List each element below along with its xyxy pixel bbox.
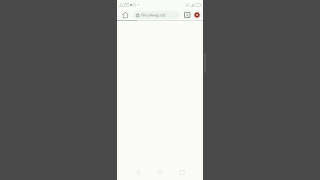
button[interactable]: filmy4wap.site (133, 11, 179, 19)
staticText: 4G (185, 2, 190, 8)
button[interactable]: Back (133, 165, 143, 180)
staticText: filmy4wap.site (141, 12, 166, 18)
button[interactable]: Home (117, 10, 133, 20)
staticText: 4 (186, 12, 188, 18)
staticText: • (137, 1, 139, 9)
button[interactable]: Account (192, 10, 202, 20)
button[interactable]: Home (155, 165, 165, 180)
button[interactable]: Recent apps (177, 165, 187, 180)
button[interactable]: Open tabs (182, 10, 192, 20)
